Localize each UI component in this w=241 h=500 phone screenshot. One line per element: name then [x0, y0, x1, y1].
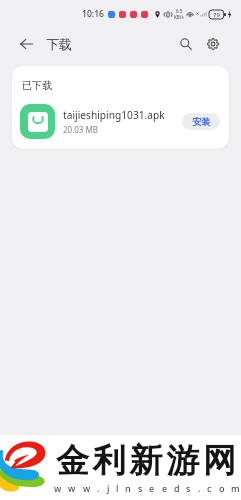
staticText: j	[107, 482, 110, 494]
staticText: 10:16	[82, 8, 105, 20]
staticText: w	[83, 482, 91, 494]
staticText: e	[162, 482, 168, 494]
staticText: .	[198, 482, 201, 494]
staticText: KB/s	[174, 14, 184, 20]
button[interactable]: 安装	[182, 113, 220, 130]
staticText: s	[186, 482, 191, 494]
staticText: w	[54, 482, 62, 494]
staticText: m	[231, 482, 240, 494]
button[interactable]: Settings	[202, 33, 224, 55]
staticText: 金利新游网	[54, 440, 238, 482]
staticText: .	[97, 482, 100, 494]
staticText: d	[174, 482, 180, 494]
staticText: c	[207, 482, 212, 494]
button[interactable]: Back	[20, 33, 33, 55]
staticText: 安装	[192, 116, 211, 128]
staticText: n	[125, 482, 131, 494]
staticText: o	[219, 482, 225, 494]
staticText: taijieshiping1031.apk	[63, 108, 165, 122]
button[interactable]: taijieshiping1031.apk	[20, 104, 220, 139]
staticText: 79	[213, 11, 220, 19]
button[interactable]: Search	[175, 33, 197, 55]
staticText: 20.03 MB	[63, 124, 98, 135]
staticText: 已下载	[22, 79, 52, 92]
staticText: w	[68, 482, 76, 494]
staticText: l	[116, 482, 119, 494]
staticText: e	[149, 482, 155, 494]
staticText: 下载	[46, 36, 72, 52]
staticText: s	[138, 482, 143, 494]
staticText: 6.5	[176, 8, 183, 14]
